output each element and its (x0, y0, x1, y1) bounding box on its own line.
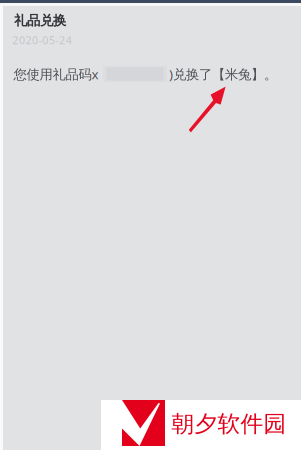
staticText: 礼品兑换 (14, 12, 66, 29)
staticText: 2020-05-24 (12, 33, 72, 47)
staticText: 朝夕软件园 (171, 410, 286, 438)
staticText: 您使用礼品码x (13, 65, 98, 83)
staticText: )兑换了【米兔】。 (169, 65, 277, 83)
button[interactable]: 礼品兑换 (0, 0, 301, 92)
